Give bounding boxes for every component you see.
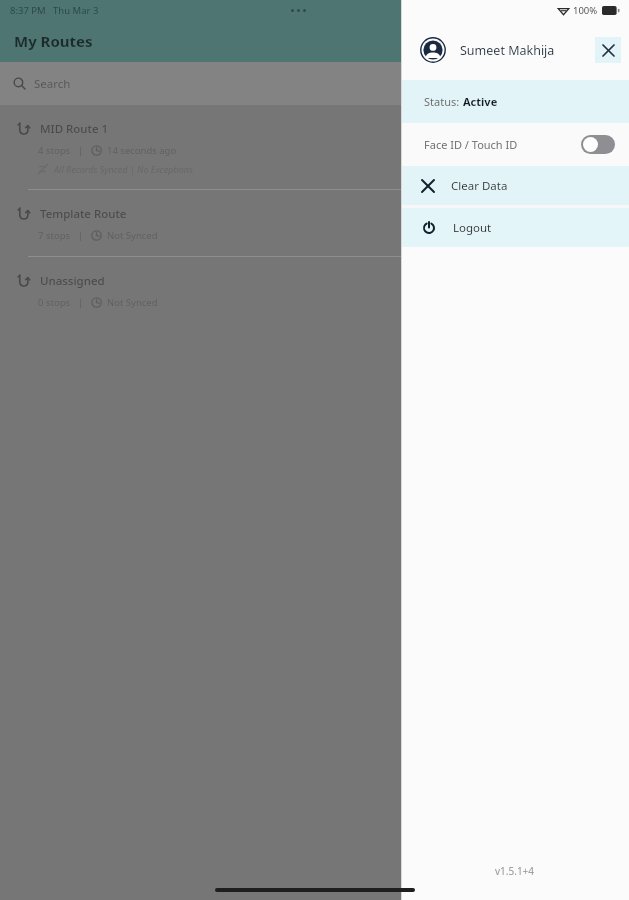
staticText: 7 stops — [38, 229, 71, 242]
button[interactable]: Logout — [401, 208, 629, 247]
button[interactable]: Status: — [401, 80, 629, 123]
staticText: 4 stops — [38, 144, 71, 157]
staticText: | — [78, 229, 84, 242]
staticText: MID Route 1 — [40, 121, 109, 137]
staticText: Not Synced — [107, 296, 158, 309]
staticText: All Records Synced | No Exceptions — [54, 163, 193, 175]
staticText: Search — [34, 76, 71, 92]
staticText: | — [78, 296, 84, 309]
staticText: 14 seconds ago — [107, 144, 177, 157]
button[interactable]: Face ID / Touch ID — [401, 123, 629, 166]
staticText: Not Synced — [107, 229, 158, 242]
button[interactable]: Search — [13, 62, 401, 105]
staticText: Active — [463, 94, 498, 109]
staticText: Face ID / Touch ID — [424, 137, 518, 152]
staticText: v1.5.1+4 — [495, 864, 535, 878]
button[interactable]: Unassigned — [0, 257, 401, 323]
button[interactable]: MID Route 1 — [0, 105, 401, 189]
staticText: Clear Data — [451, 178, 508, 194]
staticText: My Routes — [14, 31, 93, 51]
button[interactable]: Close — [595, 37, 621, 63]
button[interactable]: Template Route — [0, 190, 401, 256]
staticText: Sumeet Makhija — [460, 42, 555, 59]
staticText: Unassigned — [40, 273, 105, 289]
staticText: Status: — [424, 94, 463, 109]
staticText: 0 stops — [38, 296, 71, 309]
staticText: Template Route — [40, 206, 127, 222]
staticText: | — [78, 144, 84, 157]
button[interactable]: Clear Data — [401, 166, 629, 205]
button[interactable]: Sumeet Makhija — [420, 37, 595, 63]
staticText: Logout — [453, 220, 492, 236]
staticText: 8:37 PM Thu Mar 3 — [10, 4, 99, 17]
staticText: 100% — [573, 4, 598, 17]
